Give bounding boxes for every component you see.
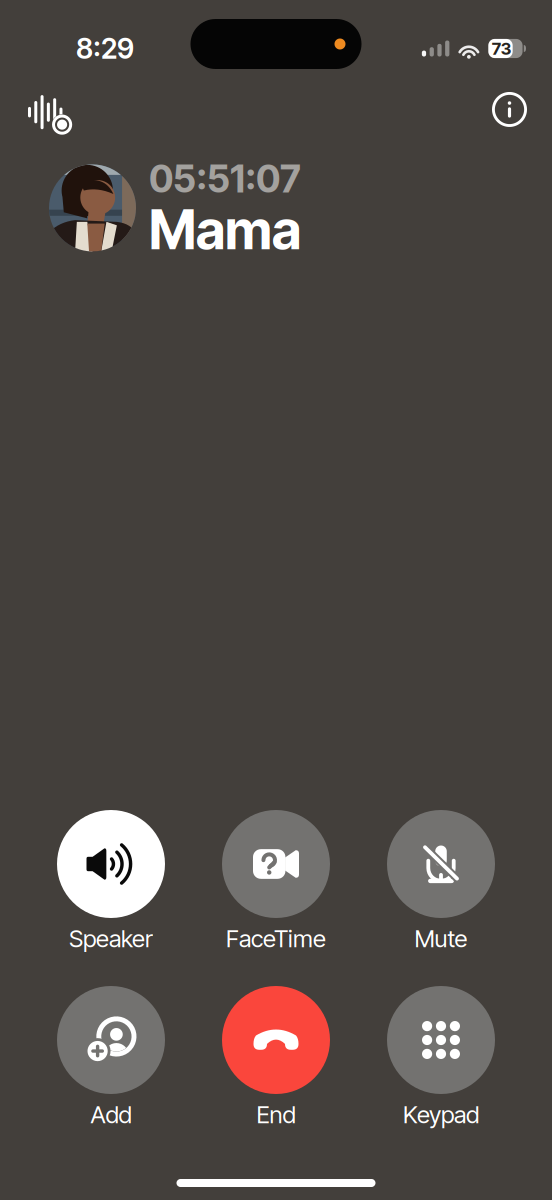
staticText: Keypad [403, 1100, 479, 1129]
staticText: End [256, 1100, 295, 1129]
staticText: FaceTime [226, 924, 326, 953]
button[interactable]: Mute [366, 810, 516, 951]
staticText: 73 [492, 38, 512, 59]
staticText: 8:29 [76, 32, 134, 65]
button[interactable]: Voice Isolation [16, 84, 84, 147]
button[interactable]: FaceTime [201, 810, 351, 951]
staticText: Mute [414, 924, 467, 953]
staticText: Add [90, 1100, 131, 1129]
staticText: Mama [149, 198, 301, 262]
staticText: 05:51:07 [149, 156, 301, 202]
button[interactable]: Add [36, 986, 186, 1127]
staticText: Speaker [69, 924, 153, 953]
button[interactable]: Keypad [366, 986, 516, 1127]
button[interactable]: End [201, 986, 351, 1127]
button[interactable]: Call Details [480, 86, 539, 145]
button[interactable]: Speaker [36, 810, 186, 951]
